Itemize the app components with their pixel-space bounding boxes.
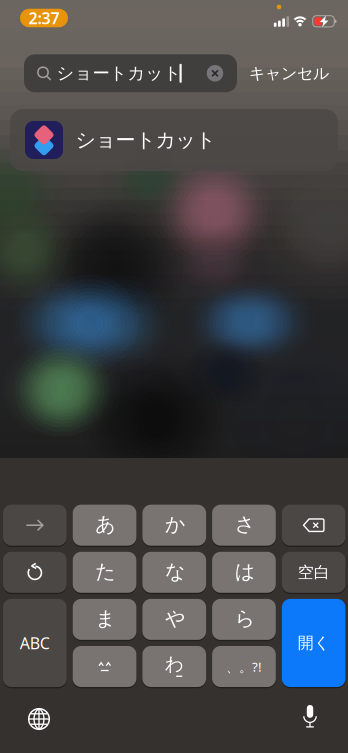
- staticText: は: [235, 559, 255, 584]
- button[interactable]: 次候補: [3, 504, 67, 547]
- staticText: ショートカット: [56, 63, 181, 84]
- staticText: わ: [165, 652, 184, 675]
- staticText: ABC: [20, 632, 50, 653]
- button[interactable]: あ: [73, 504, 136, 547]
- button[interactable]: わ: [142, 645, 206, 688]
- button[interactable]: た: [73, 551, 136, 594]
- staticText: た: [95, 559, 115, 584]
- button[interactable]: キャンセル: [249, 63, 329, 83]
- staticText: あ: [95, 512, 115, 537]
- button[interactable]: ショートカット: [0, 109, 348, 171]
- staticText: 空白: [298, 562, 330, 582]
- button[interactable]: 音声入力: [300, 704, 320, 728]
- button[interactable]: 顔文字: [73, 645, 136, 688]
- staticText: キャンセル: [249, 63, 329, 83]
- button[interactable]: 、。?!: [212, 645, 276, 688]
- staticText: ら: [235, 606, 255, 631]
- button[interactable]: さ: [212, 504, 276, 547]
- staticText: な: [165, 559, 185, 584]
- button[interactable]: ら: [212, 598, 276, 641]
- button[interactable]: は: [212, 551, 276, 594]
- staticText: 、。?!: [226, 658, 262, 675]
- button[interactable]: 元に戻す: [3, 551, 67, 594]
- button[interactable]: 削除: [282, 504, 345, 547]
- staticText: 開く: [298, 633, 330, 653]
- button[interactable]: ま: [73, 598, 136, 641]
- staticText: さ: [235, 512, 255, 537]
- staticText: ま: [95, 606, 115, 631]
- button[interactable]: Screen recording 2:37: [20, 7, 68, 29]
- button[interactable]: 検索フィールド: [24, 54, 237, 92]
- button[interactable]: な: [142, 551, 206, 594]
- button[interactable]: Clear text: [207, 65, 223, 81]
- staticText: や: [165, 606, 185, 631]
- button[interactable]: ABC: [3, 598, 67, 688]
- staticText: ショートカット: [75, 128, 215, 152]
- button[interactable]: 次のキーボード: [28, 708, 50, 730]
- staticText: か: [165, 512, 185, 537]
- button[interactable]: 空白: [282, 551, 345, 594]
- button[interactable]: や: [142, 598, 206, 641]
- button[interactable]: か: [142, 504, 206, 547]
- button[interactable]: 開く: [282, 598, 345, 688]
- staticText: 2:37: [28, 7, 59, 29]
